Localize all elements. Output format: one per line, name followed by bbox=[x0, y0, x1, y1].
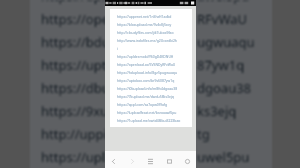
staticText: http://uppi bbox=[41, 125, 107, 143]
staticText: https://upl bbox=[41, 148, 106, 166]
staticText: https://bdu bbox=[41, 33, 110, 51]
staticText: RFvWaU bbox=[197, 10, 248, 28]
staticText: https://openload.co/5VSNDyRFvWaU bbox=[117, 62, 176, 67]
staticText: https://1upload.me/xwtd48ibui3223bao bbox=[117, 118, 181, 123]
staticText: uwel5pu bbox=[197, 148, 250, 166]
staticText: http://www.indofiles.me/g2Ucordki2h bbox=[117, 38, 177, 43]
staticText: 87yw1q bbox=[197, 56, 245, 74]
staticText: http://cloudyfiles.com/jik7ubox9fao bbox=[117, 30, 174, 35]
staticText: https://luploadfeazt.net/brzoaawl5pu bbox=[117, 110, 177, 115]
staticText: https://uplder.mobi/Y60gD4KDNUH bbox=[117, 54, 174, 59]
staticText: ugwuaqu bbox=[197, 33, 255, 51]
staticText: https://i0bupload.info/m8fv4dgoau38 bbox=[117, 86, 178, 91]
button[interactable]: Back bbox=[107, 155, 120, 168]
staticText: https://appl.com/sa7opw0f9afg bbox=[117, 102, 168, 107]
staticText: https://uppenet.net/1nShzH1adkd bbox=[117, 14, 172, 19]
button[interactable]: Home bbox=[181, 155, 194, 168]
staticText: https://7kupload.me/dwdu58ks3ejq bbox=[117, 94, 174, 99]
staticText: https://uptobox.com/br9s6087yw1q bbox=[117, 78, 175, 83]
staticText: uwel5pu bbox=[197, 0, 250, 5]
staticText: i bbox=[117, 46, 118, 51]
staticText: https://upt bbox=[41, 56, 107, 74]
staticText: https://ope bbox=[41, 10, 109, 28]
staticText: ks3ejq bbox=[197, 102, 237, 120]
button[interactable]: Menu bbox=[144, 155, 157, 168]
button[interactable]: Forward bbox=[126, 155, 139, 168]
staticText: dgoau38 bbox=[197, 79, 252, 97]
staticText: tg bbox=[197, 125, 210, 143]
staticText: https://dbu bbox=[41, 79, 110, 97]
staticText: https://9xu bbox=[41, 102, 109, 120]
staticText: https://upl bbox=[41, 0, 106, 5]
button[interactable]: Tabs bbox=[163, 155, 176, 168]
staticText: https://hdupload.info/8gz5pugwuaqu bbox=[117, 70, 177, 75]
staticText: https://bloxupload.me/9v4v8j5ocy bbox=[117, 22, 172, 27]
